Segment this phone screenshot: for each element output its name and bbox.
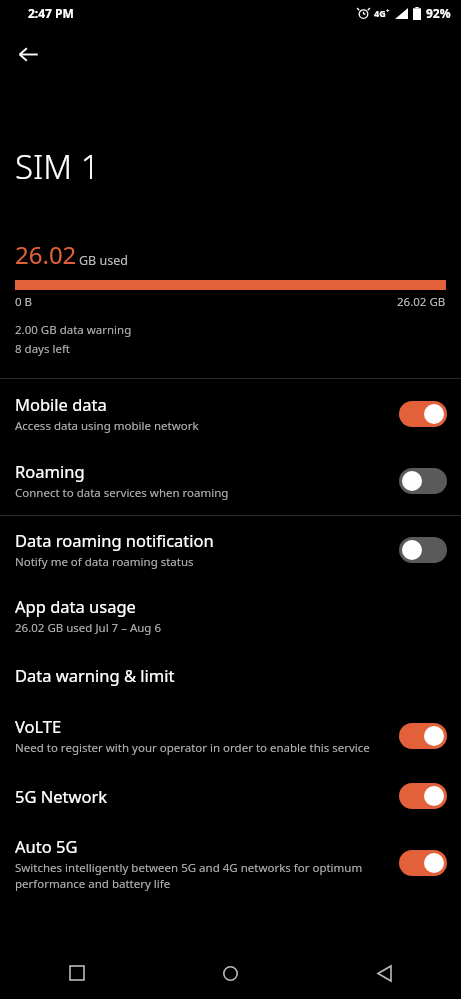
staticText: Auto 5G [15, 835, 78, 857]
staticText: 8 days left [15, 341, 71, 357]
button[interactable]: VoLTE [0, 702, 461, 769]
staticText: Mobile data [15, 393, 107, 415]
staticText: SIM 1 [15, 144, 100, 189]
staticText: VoLTE [15, 715, 62, 737]
staticText: GB used [79, 252, 128, 269]
button[interactable] [399, 537, 447, 563]
staticText: 2:47 PM [28, 5, 74, 21]
button[interactable]: Recents [0, 947, 153, 999]
button[interactable] [399, 850, 447, 876]
staticText: Data warning & limit [15, 664, 175, 686]
button[interactable]: Home [153, 947, 307, 999]
staticText: 26.02 GB [397, 294, 446, 310]
staticText: 26.02 [15, 238, 77, 271]
button[interactable]: Auto 5G [0, 823, 461, 903]
staticText: Need to register with your operator in o… [15, 740, 370, 756]
staticText: Connect to data services when roaming [15, 485, 229, 501]
button[interactable]: Roaming [0, 448, 461, 515]
staticText: 26.02 GB used Jul 7 – Aug 6 [15, 620, 161, 636]
button[interactable]: Mobile data [0, 379, 461, 448]
staticText: Switches intelligently between 5G and 4G… [15, 860, 389, 891]
staticText: 5G Network [15, 785, 108, 807]
staticText: 0 B [15, 294, 33, 310]
staticText: App data usage [15, 595, 136, 617]
staticText: Access data using mobile network [15, 418, 199, 434]
button[interactable] [399, 723, 447, 749]
staticText: Roaming [15, 460, 85, 482]
button[interactable]: App data usage [0, 583, 461, 648]
button[interactable]: Data warning & limit [0, 648, 461, 702]
button[interactable]: Back [307, 947, 461, 999]
staticText: 2.00 GB data warning [15, 322, 132, 338]
staticText: 92% [426, 5, 451, 21]
staticText: Notify me of data roaming status [15, 554, 194, 570]
staticText: 4G [374, 7, 386, 19]
button[interactable] [399, 783, 447, 809]
button[interactable] [399, 468, 447, 494]
button[interactable]: Data roaming notification [0, 516, 461, 583]
staticText: + [386, 7, 390, 15]
button[interactable]: Back [8, 34, 48, 74]
button[interactable]: 5G Network [0, 769, 461, 823]
button[interactable] [399, 401, 447, 427]
staticText: Data roaming notification [15, 529, 214, 551]
